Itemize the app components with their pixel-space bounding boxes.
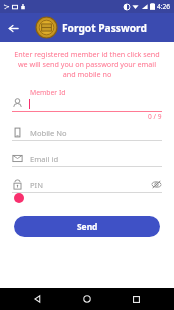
staticText: Member Id bbox=[30, 88, 66, 97]
button[interactable]: Send bbox=[14, 216, 160, 237]
staticText: Send bbox=[77, 221, 98, 232]
staticText: Email id bbox=[30, 154, 59, 164]
button[interactable]: Email id bbox=[12, 153, 162, 167]
staticText: 0 / 9 bbox=[148, 112, 162, 121]
staticText: Forgot Password bbox=[62, 21, 147, 35]
button[interactable]: Home bbox=[76, 288, 98, 310]
button[interactable]: Show password bbox=[151, 179, 162, 190]
button[interactable]: Recent apps bbox=[125, 288, 147, 310]
button[interactable]: Member Id bbox=[12, 88, 162, 112]
button[interactable]: PIN bbox=[12, 179, 162, 203]
staticText: Enter registered member id then click se… bbox=[12, 49, 162, 79]
staticText: PIN bbox=[30, 180, 43, 190]
button[interactable]: Back bbox=[27, 288, 49, 310]
staticText: Mobile No bbox=[30, 128, 67, 138]
staticText: 4:26 bbox=[157, 2, 171, 11]
button[interactable]: Back bbox=[3, 18, 23, 38]
button[interactable]: Mobile No bbox=[12, 127, 162, 141]
